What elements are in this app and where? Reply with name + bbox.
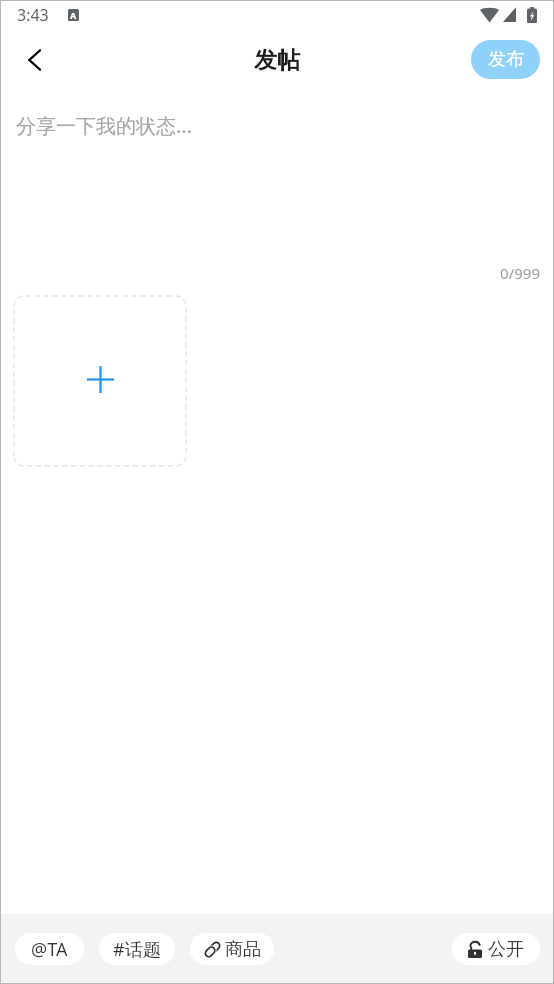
button[interactable]: @TA bbox=[15, 933, 84, 965]
staticText: #话题 bbox=[113, 937, 161, 962]
button[interactable]: 商品 bbox=[190, 933, 274, 965]
button[interactable]: Back bbox=[11, 37, 57, 83]
staticText: 公开 bbox=[488, 938, 524, 961]
staticText: 商品 bbox=[225, 938, 261, 961]
button[interactable]: 公开 bbox=[452, 933, 540, 965]
staticText: 0/999 bbox=[0, 263, 540, 283]
staticText: 分享一下我的状态... bbox=[16, 112, 193, 139]
staticText: @TA bbox=[31, 937, 68, 962]
staticText: A bbox=[70, 9, 77, 21]
staticText: 3:43 bbox=[17, 4, 49, 26]
button[interactable]: #话题 bbox=[99, 933, 175, 965]
staticText: 发布 bbox=[488, 48, 524, 71]
button[interactable]: Post text field bbox=[0, 91, 554, 263]
button[interactable]: 发布 bbox=[471, 40, 540, 79]
button[interactable]: Add image bbox=[14, 296, 186, 466]
staticText: 发帖 bbox=[254, 46, 300, 75]
